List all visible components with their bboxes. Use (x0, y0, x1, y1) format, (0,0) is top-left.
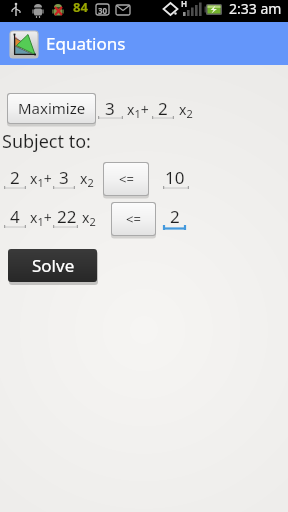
staticText: x2 (179, 100, 193, 121)
staticText: 30 (98, 5, 108, 16)
staticText: 3 (105, 97, 115, 120)
button[interactable] (98, 97, 123, 120)
button[interactable]: Maximize (7, 93, 96, 125)
button[interactable] (163, 166, 189, 190)
button[interactable]: <= (103, 162, 149, 197)
button[interactable]: <= (111, 202, 156, 237)
button[interactable] (53, 205, 78, 229)
staticText: 22 (57, 205, 77, 228)
button[interactable] (4, 205, 26, 229)
staticText: x1+ (127, 100, 149, 121)
staticText: x2 (82, 208, 96, 229)
button[interactable] (53, 166, 75, 190)
staticText: 2:33 am (229, 0, 282, 18)
staticText: 2 (170, 205, 180, 228)
staticText: 3 (59, 166, 69, 189)
staticText: Equations (46, 32, 126, 55)
staticText: x1+ (30, 208, 52, 229)
staticText: 10 (165, 166, 185, 189)
button[interactable]: Solve (8, 249, 98, 284)
staticText: x1+ (30, 169, 52, 190)
button[interactable] (152, 97, 174, 120)
staticText: Subject to: (2, 129, 91, 154)
button[interactable] (4, 166, 26, 190)
staticText: <= (119, 170, 134, 188)
staticText: Solve (32, 254, 75, 277)
staticText: 2 (10, 166, 20, 189)
staticText: Maximize (18, 98, 86, 118)
staticText: 2 (158, 97, 168, 120)
staticText: <= (126, 210, 141, 228)
staticText: x2 (80, 169, 94, 190)
staticText: H (181, 0, 188, 9)
staticText: 84 (73, 0, 88, 16)
button[interactable] (163, 205, 186, 231)
staticText: 4 (10, 205, 20, 228)
